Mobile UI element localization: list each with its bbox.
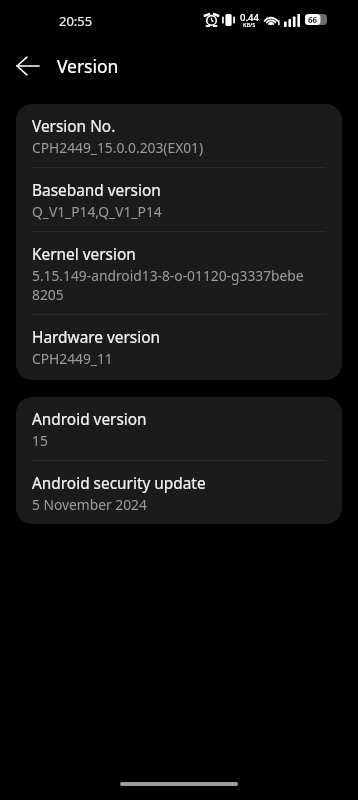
- button[interactable]: Back: [0, 38, 56, 94]
- staticText: CPH2449_11: [32, 349, 113, 368]
- staticText: 0.44: [240, 11, 259, 24]
- button[interactable]: Baseband version: [16, 168, 342, 232]
- button[interactable]: Hardware version: [16, 315, 342, 378]
- staticText: Version: [57, 54, 119, 78]
- staticText: Kernel version: [32, 244, 136, 265]
- staticText: Android security update: [32, 473, 206, 494]
- staticText: Q_V1_P14,Q_V1_P14: [32, 202, 162, 221]
- button[interactable]: Android security update: [16, 461, 342, 524]
- staticText: Baseband version: [32, 180, 161, 201]
- staticText: Android version: [32, 409, 147, 430]
- staticText: Hardware version: [32, 327, 161, 348]
- staticText: Version No.: [32, 116, 116, 137]
- staticText: 5.15.149-android13-8-o-01120-g3337bebe 8…: [32, 266, 328, 304]
- staticText: CPH2449_15.0.0.203(EX01): [32, 138, 204, 157]
- staticText: KB/S: [243, 21, 256, 28]
- button[interactable]: Kernel version: [16, 232, 342, 315]
- staticText: 20:55: [59, 12, 93, 30]
- button[interactable]: Version No.: [16, 104, 342, 168]
- button[interactable]: Android version: [16, 397, 342, 461]
- staticText: 15: [32, 431, 48, 450]
- staticText: 66: [308, 14, 318, 25]
- staticText: 5 November 2024: [32, 495, 147, 514]
